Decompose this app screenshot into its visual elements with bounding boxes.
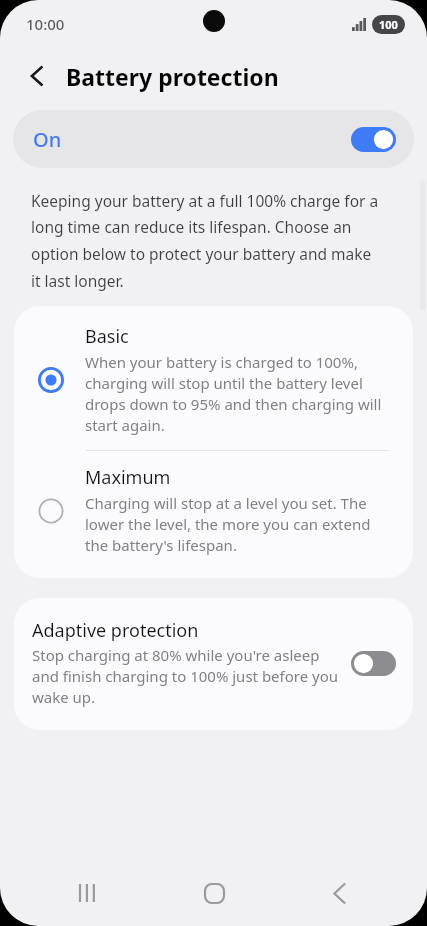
staticText: Maximum <box>85 465 171 490</box>
staticText: Basic <box>85 324 129 349</box>
button[interactable]: Adaptive protection <box>14 598 413 730</box>
button[interactable]: Recent apps <box>50 860 126 926</box>
button[interactable]: Back <box>16 55 58 97</box>
button[interactable]: On <box>13 110 414 168</box>
staticText: On <box>33 126 62 153</box>
staticText: Adaptive protection <box>32 618 199 643</box>
staticText: Stop charging at 80% while you're asleep… <box>32 645 341 708</box>
staticText: 100 <box>379 17 398 32</box>
staticText: Charging will stop at a level you set. T… <box>85 493 395 556</box>
staticText: Battery protection <box>66 61 279 92</box>
button[interactable]: Back <box>301 860 377 926</box>
staticText: 10:00 <box>26 14 65 34</box>
button[interactable]: Home <box>176 860 252 926</box>
staticText: When your battery is charged to 100%, ch… <box>85 352 395 436</box>
button[interactable]: Basic <box>14 306 413 450</box>
staticText: Keeping your battery at a full 100% char… <box>31 190 383 292</box>
button[interactable]: Maximum <box>14 451 413 578</box>
